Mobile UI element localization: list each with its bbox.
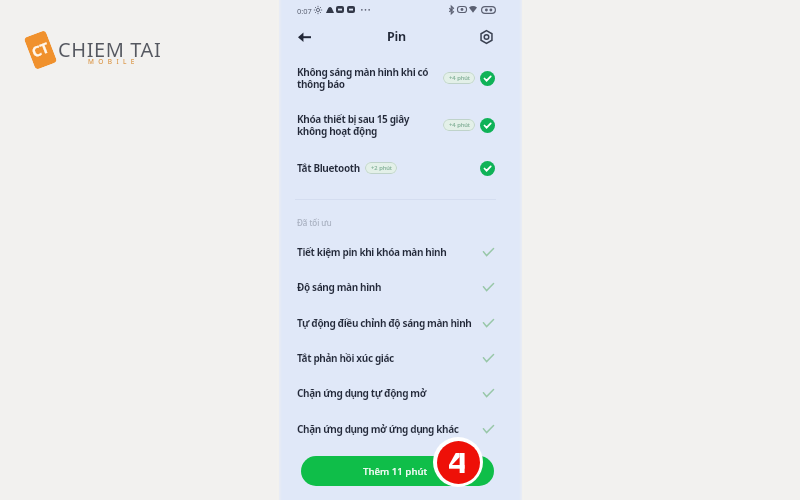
button[interactable]: Tự động điều chỉnh độ sáng màn hình bbox=[279, 310, 522, 336]
button[interactable]: Chặn ứng dụng tự động mở bbox=[279, 380, 522, 406]
button[interactable]: Settings bbox=[476, 26, 497, 47]
button[interactable]: Thêm 11 phút bbox=[301, 456, 494, 486]
staticText: CHIEM TAI bbox=[58, 36, 162, 63]
staticText: MOBILE bbox=[88, 57, 139, 66]
staticText: +2 phút bbox=[371, 164, 392, 172]
button[interactable]: Tắt phản hồi xúc giác bbox=[279, 345, 522, 371]
button[interactable]: Step 4 bbox=[433, 437, 483, 487]
staticText: Tắt phản hồi xúc giác bbox=[297, 351, 394, 365]
staticText: Khóa thiết bị sau 15 giây bbox=[297, 112, 410, 126]
button[interactable]: Chặn ứng dụng mở ứng dụng khác bbox=[279, 416, 522, 442]
button[interactable]: Back bbox=[293, 26, 315, 48]
staticText: Tắt Bluetooth bbox=[297, 161, 360, 175]
staticText: Không sáng màn hình khi có bbox=[297, 65, 429, 79]
staticText: CT bbox=[29, 38, 52, 61]
staticText: Độ sáng màn hình bbox=[297, 280, 382, 294]
staticText: Chặn ứng dụng mở ứng dụng khác bbox=[297, 422, 459, 436]
staticText: 0:07 bbox=[297, 6, 312, 16]
staticText: Thêm 11 phút bbox=[363, 465, 428, 478]
staticText: không hoạt động bbox=[297, 124, 378, 138]
staticText: Đã tối ưu bbox=[297, 217, 332, 228]
staticText: Tiết kiệm pin khi khóa màn hình bbox=[297, 245, 447, 259]
button[interactable]: Khóa thiết bị sau 15 giây bbox=[279, 110, 522, 140]
staticText: Tự động điều chỉnh độ sáng màn hình bbox=[297, 316, 472, 330]
button[interactable]: Không sáng màn hình khi có bbox=[279, 63, 522, 93]
staticText: thông báo bbox=[297, 77, 345, 91]
staticText: +4 phút bbox=[449, 121, 470, 129]
button[interactable]: Tắt Bluetooth bbox=[279, 153, 522, 183]
button[interactable]: Độ sáng màn hình bbox=[279, 274, 522, 300]
staticText: +4 phút bbox=[449, 74, 470, 82]
staticText: Chặn ứng dụng tự động mở bbox=[297, 386, 427, 400]
staticText: Pin bbox=[387, 28, 407, 45]
button[interactable]: Tiết kiệm pin khi khóa màn hình bbox=[279, 239, 522, 265]
